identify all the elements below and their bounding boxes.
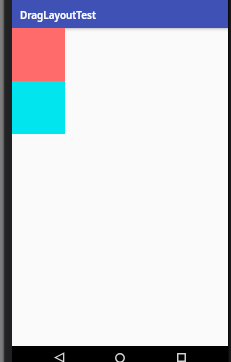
- staticText: DragLayoutTest: [20, 8, 96, 21]
- button[interactable]: Recents: [165, 351, 197, 362]
- button[interactable]: Home: [104, 351, 136, 362]
- button[interactable]: Back: [43, 351, 75, 362]
